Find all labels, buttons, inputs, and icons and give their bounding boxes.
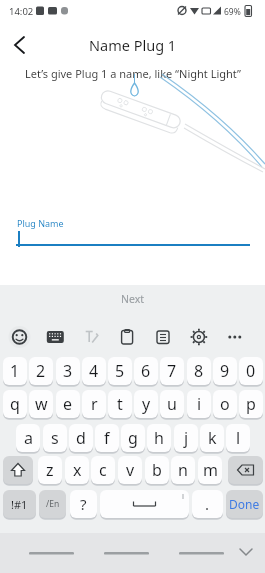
- staticText: d: [76, 427, 86, 449]
- button[interactable]: [100, 490, 189, 518]
- button[interactable]: h: [147, 424, 171, 452]
- staticText: n: [178, 459, 188, 481]
- staticText: 6: [141, 360, 151, 382]
- button[interactable]: i: [187, 390, 211, 418]
- button[interactable]: .: [192, 490, 223, 518]
- button[interactable]: ?: [70, 490, 97, 518]
- button[interactable]: 6: [134, 357, 158, 385]
- button[interactable]: l: [226, 424, 250, 452]
- staticText: q: [10, 393, 20, 415]
- staticText: x: [73, 459, 82, 481]
- button[interactable]: m: [198, 456, 222, 484]
- button[interactable]: t: [108, 390, 132, 418]
- button[interactable]: 3: [56, 357, 80, 385]
- button[interactable]: v: [118, 456, 142, 484]
- staticText: e: [63, 393, 73, 415]
- staticText: o: [220, 393, 230, 415]
- staticText: b: [152, 459, 162, 481]
- button[interactable]: u: [160, 390, 184, 418]
- button[interactable]: g: [121, 424, 145, 452]
- button[interactable]: n: [171, 456, 195, 484]
- button[interactable]: q: [3, 390, 27, 418]
- button[interactable]: 8: [187, 357, 211, 385]
- button[interactable]: !#1: [3, 490, 36, 518]
- button[interactable]: Done: [226, 490, 263, 518]
- button[interactable]: e: [56, 390, 80, 418]
- staticText: l: [236, 427, 241, 449]
- staticText: j: [184, 427, 189, 449]
- button[interactable]: /En: [39, 490, 66, 518]
- staticText: Done: [229, 496, 260, 512]
- staticText: f: [104, 427, 110, 449]
- staticText: v: [126, 459, 135, 481]
- staticText: r: [91, 393, 98, 415]
- button[interactable]: 9: [213, 357, 237, 385]
- button[interactable]: s: [43, 424, 67, 452]
- staticText: Name Plug 1: [89, 35, 177, 55]
- button[interactable]: k: [200, 424, 224, 452]
- staticText: Next: [121, 292, 145, 306]
- button[interactable]: p: [239, 390, 263, 418]
- staticText: k: [208, 427, 217, 449]
- button[interactable]: 0: [239, 357, 263, 385]
- button[interactable]: [8, 33, 34, 57]
- button[interactable]: 7: [160, 357, 184, 385]
- button[interactable]: w: [29, 390, 53, 418]
- staticText: 7: [167, 360, 177, 382]
- button[interactable]: 5: [108, 357, 132, 385]
- staticText: 5: [115, 360, 125, 382]
- button[interactable]: o: [213, 390, 237, 418]
- staticText: !#1: [11, 497, 28, 512]
- staticText: 9: [220, 360, 230, 382]
- staticText: w: [35, 393, 48, 415]
- staticText: m: [203, 459, 218, 481]
- staticText: Let’s give Plug 1 a name, like “Night Li…: [25, 66, 241, 81]
- staticText: 0: [246, 360, 256, 382]
- staticText: 69%: [224, 6, 241, 18]
- staticText: p: [246, 393, 256, 415]
- staticText: 2: [36, 360, 46, 382]
- staticText: Plug Name: [17, 217, 64, 229]
- staticText: 3: [63, 360, 73, 382]
- button[interactable]: j: [174, 424, 198, 452]
- button[interactable]: 4: [82, 357, 106, 385]
- staticText: t: [117, 393, 123, 415]
- staticText: z: [46, 459, 54, 481]
- button[interactable]: x: [65, 456, 89, 484]
- button[interactable]: a: [16, 424, 40, 452]
- button[interactable]: r: [82, 390, 106, 418]
- staticText: /En: [46, 498, 60, 510]
- staticText: .: [205, 494, 210, 514]
- staticText: y: [142, 393, 151, 415]
- staticText: g: [128, 427, 138, 449]
- staticText: 14:02: [9, 5, 34, 18]
- button[interactable]: b: [145, 456, 169, 484]
- staticText: h: [154, 427, 164, 449]
- button[interactable]: c: [91, 456, 115, 484]
- staticText: s: [51, 427, 59, 449]
- staticText: 4: [89, 360, 99, 382]
- button[interactable]: 1: [3, 357, 27, 385]
- staticText: i: [197, 393, 202, 415]
- staticText: 8: [194, 360, 204, 382]
- button[interactable]: [3, 456, 33, 484]
- button[interactable]: 2: [29, 357, 53, 385]
- staticText: ?: [80, 494, 87, 514]
- button[interactable]: z: [38, 456, 62, 484]
- staticText: a: [24, 427, 33, 449]
- staticText: u: [167, 393, 177, 415]
- button[interactable]: f: [95, 424, 119, 452]
- staticText: 1: [10, 360, 20, 382]
- button[interactable]: d: [69, 424, 93, 452]
- staticText: c: [99, 459, 107, 481]
- button[interactable]: y: [134, 390, 158, 418]
- button[interactable]: [228, 456, 263, 484]
